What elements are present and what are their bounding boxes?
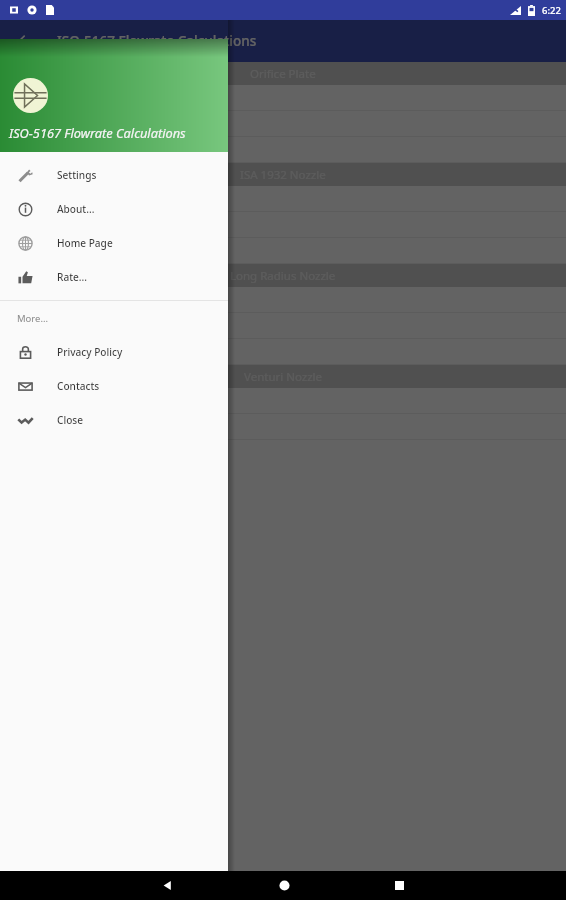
button[interactable]: Recents bbox=[371, 871, 427, 900]
staticText: Contacts bbox=[57, 379, 100, 393]
button[interactable] bbox=[0, 287, 566, 312]
staticText: ISO-5167 Flowrate Calculations bbox=[57, 32, 257, 50]
button[interactable]: Close bbox=[0, 403, 228, 437]
button[interactable] bbox=[0, 212, 566, 237]
staticText: Close bbox=[57, 413, 84, 427]
button[interactable] bbox=[0, 339, 566, 364]
button[interactable]: Home Page bbox=[0, 226, 228, 260]
button[interactable]: Contacts bbox=[0, 369, 228, 403]
staticText: More... bbox=[17, 312, 49, 325]
button[interactable] bbox=[0, 388, 566, 413]
button[interactable] bbox=[0, 313, 566, 338]
staticText: Rate... bbox=[57, 270, 88, 284]
button[interactable]: Privacy Policy bbox=[0, 335, 228, 369]
staticText: About... bbox=[57, 202, 95, 216]
button[interactable]: Back bbox=[13, 29, 37, 53]
button[interactable]: Home bbox=[256, 871, 312, 900]
button[interactable] bbox=[0, 414, 566, 439]
staticText: Home Page bbox=[57, 236, 113, 250]
button[interactable]: About... bbox=[0, 192, 228, 226]
button[interactable] bbox=[0, 0, 566, 900]
button[interactable] bbox=[0, 85, 566, 110]
button[interactable]: Rate... bbox=[0, 260, 228, 294]
button[interactable] bbox=[0, 111, 566, 136]
button[interactable]: Settings bbox=[0, 158, 228, 192]
button[interactable] bbox=[0, 186, 566, 211]
staticText: Long Radius Nozzle bbox=[230, 268, 336, 284]
staticText: 6:22 bbox=[542, 4, 561, 17]
staticText: Privacy Policy bbox=[57, 345, 123, 359]
staticText: Venturi Nozzle bbox=[244, 369, 323, 385]
button[interactable]: Back bbox=[139, 871, 195, 900]
staticText: ISO-5167 Flowrate Calculations bbox=[9, 124, 186, 141]
staticText: Settings bbox=[57, 168, 97, 182]
staticText: ISA 1932 Nozzle bbox=[240, 167, 326, 183]
staticText: Orifice Plate bbox=[250, 66, 316, 82]
button[interactable] bbox=[0, 238, 566, 263]
button[interactable] bbox=[0, 137, 566, 162]
